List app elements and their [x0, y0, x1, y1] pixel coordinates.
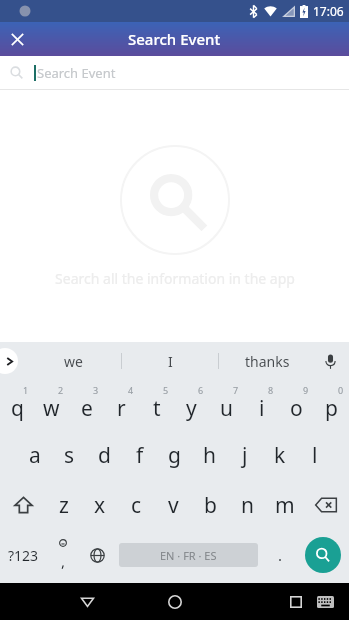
button[interactable]: Shift [0, 480, 46, 530]
staticText: a [29, 441, 41, 470]
staticText: o [290, 394, 303, 423]
staticText: . [278, 545, 283, 565]
button[interactable]: c [118, 480, 155, 530]
staticText: h [203, 441, 216, 470]
button[interactable]: EN · FR · ES [119, 543, 258, 567]
staticText: p [325, 394, 338, 423]
staticText: we [64, 352, 83, 371]
staticText: m [275, 491, 295, 520]
button[interactable]: g [157, 430, 192, 480]
button[interactable]: Voice input [315, 342, 345, 380]
button[interactable]: Close [0, 22, 34, 56]
button[interactable]: 2 [34, 380, 69, 430]
staticText: 5 [163, 384, 169, 396]
button[interactable]: . [263, 530, 297, 580]
button[interactable]: j [227, 430, 262, 480]
button[interactable]: Emoji and comma [46, 530, 80, 580]
button[interactable]: More suggestions [0, 348, 18, 374]
button[interactable]: ?123 [0, 530, 46, 580]
button[interactable]: a [17, 430, 52, 480]
button[interactable]: 5 [139, 380, 174, 430]
staticText: 3 [93, 384, 99, 396]
staticText: q [11, 394, 24, 423]
staticText: s [64, 441, 75, 470]
staticText: i [259, 394, 265, 423]
staticText: 6 [198, 384, 204, 396]
button[interactable]: z [46, 480, 82, 530]
button[interactable]: f [122, 430, 157, 480]
staticText: f [136, 441, 144, 470]
staticText: I [168, 352, 173, 371]
staticText: EN · FR · ES [160, 548, 217, 563]
button[interactable]: Search [297, 530, 349, 580]
staticText: 7 [233, 384, 239, 396]
button[interactable]: 9 [279, 380, 314, 430]
staticText: 0 [338, 384, 344, 396]
button[interactable]: 4 [104, 380, 139, 430]
staticText: b [204, 491, 217, 520]
button[interactable]: n [229, 480, 266, 530]
button[interactable]: l [297, 430, 332, 480]
staticText: g [168, 441, 181, 470]
button[interactable]: 3 [69, 380, 104, 430]
staticText: l [312, 441, 318, 470]
button[interactable]: Backspace [303, 480, 349, 530]
staticText: 4 [128, 384, 134, 396]
staticText: Search all the information in the app [55, 269, 295, 288]
staticText: y [186, 394, 197, 423]
staticText: u [220, 394, 233, 423]
button[interactable]: 7 [209, 380, 244, 430]
staticText: w [43, 394, 60, 423]
staticText: n [241, 491, 254, 520]
staticText: 9 [303, 384, 309, 396]
staticText: Search Event [37, 64, 116, 82]
button[interactable]: Recent apps [272, 583, 320, 620]
button[interactable]: thanks [219, 342, 315, 380]
staticText: d [98, 441, 111, 470]
button[interactable]: 1 [0, 380, 34, 430]
staticText: r [117, 394, 126, 423]
button[interactable]: v [155, 480, 192, 530]
button[interactable]: 0 [314, 380, 349, 430]
staticText: j [242, 441, 248, 470]
button[interactable]: 6 [174, 380, 209, 430]
button[interactable]: s [52, 430, 87, 480]
staticText: , [61, 551, 66, 571]
staticText: ?123 [8, 546, 39, 565]
button[interactable]: m [266, 480, 303, 530]
button[interactable]: x [82, 480, 118, 530]
button[interactable]: 8 [244, 380, 279, 430]
button[interactable]: Hide keyboard [305, 583, 345, 620]
button[interactable]: we [26, 342, 121, 380]
staticText: 17:06 [313, 3, 344, 19]
staticText: x [94, 491, 106, 520]
staticText: 1 [23, 384, 29, 396]
button[interactable]: k [262, 430, 297, 480]
staticText: c [131, 491, 142, 520]
button[interactable]: b [192, 480, 229, 530]
button[interactable]: Change language [80, 530, 114, 580]
staticText: thanks [245, 352, 290, 371]
staticText: k [274, 441, 286, 470]
button[interactable]: Search Event [0, 56, 349, 89]
staticText: e [81, 394, 93, 423]
staticText: 8 [268, 384, 274, 396]
button[interactable]: h [192, 430, 227, 480]
button[interactable]: Home [151, 583, 199, 620]
staticText: 2 [58, 384, 64, 396]
button[interactable]: Back [63, 583, 111, 620]
staticText: z [59, 491, 69, 520]
button[interactable]: d [87, 430, 122, 480]
staticText: v [168, 491, 179, 520]
staticText: t [153, 394, 161, 423]
staticText: Search Event [128, 29, 221, 49]
button[interactable]: I [122, 342, 218, 380]
